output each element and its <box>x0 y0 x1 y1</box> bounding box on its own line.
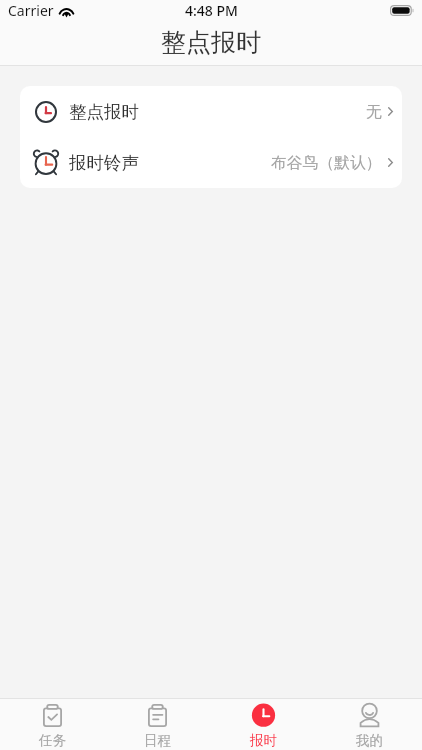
staticText: 整点报时 <box>161 27 261 58</box>
button[interactable]: 任务 <box>0 699 105 750</box>
staticText: 日程 <box>144 732 171 749</box>
staticText: 报时 <box>250 732 277 749</box>
staticText: 报时铃声 <box>69 152 139 174</box>
button[interactable]: 报时 <box>210 699 316 750</box>
staticText: 任务 <box>39 732 66 749</box>
button[interactable]: 报时铃声 <box>20 137 402 188</box>
button[interactable]: 整点报时 <box>20 86 402 137</box>
button[interactable]: 日程 <box>105 699 210 750</box>
staticText: 4:48 PM <box>185 1 238 20</box>
staticText: 我的 <box>356 732 383 749</box>
staticText: Carrier <box>8 1 54 20</box>
staticText: 布谷鸟（默认） <box>271 153 382 173</box>
staticText: 整点报时 <box>69 101 139 123</box>
staticText: 无 <box>366 102 382 122</box>
button[interactable]: 我的 <box>316 699 422 750</box>
